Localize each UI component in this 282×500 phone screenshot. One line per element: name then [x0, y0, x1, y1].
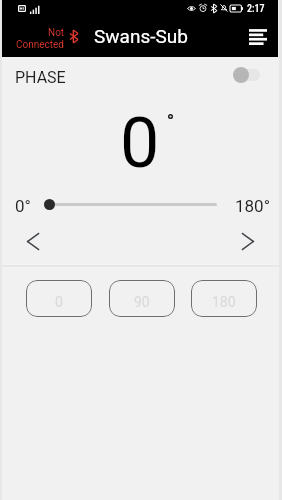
button[interactable]: Previous	[20, 228, 47, 255]
button[interactable]: 0	[26, 280, 92, 317]
staticText: Swans-Sub	[94, 25, 188, 47]
staticText: Not	[48, 27, 65, 39]
staticText: 180°	[235, 196, 271, 216]
staticText: 0	[120, 102, 160, 184]
staticText: 0°	[15, 196, 31, 216]
button[interactable]: Menu	[243, 22, 273, 52]
button[interactable]: Phase enable toggle	[231, 65, 261, 84]
staticText: 0	[55, 294, 63, 310]
button[interactable]: 180	[191, 280, 257, 317]
staticText: 2:17	[247, 3, 265, 15]
staticText: 180	[212, 294, 236, 310]
staticText: 90	[134, 294, 150, 310]
button[interactable]: Next	[235, 228, 262, 255]
staticText: PHASE	[15, 68, 66, 87]
staticText: Connected	[16, 39, 65, 51]
button[interactable]: 90	[109, 280, 175, 317]
button[interactable]: Phase slider	[40, 195, 220, 215]
